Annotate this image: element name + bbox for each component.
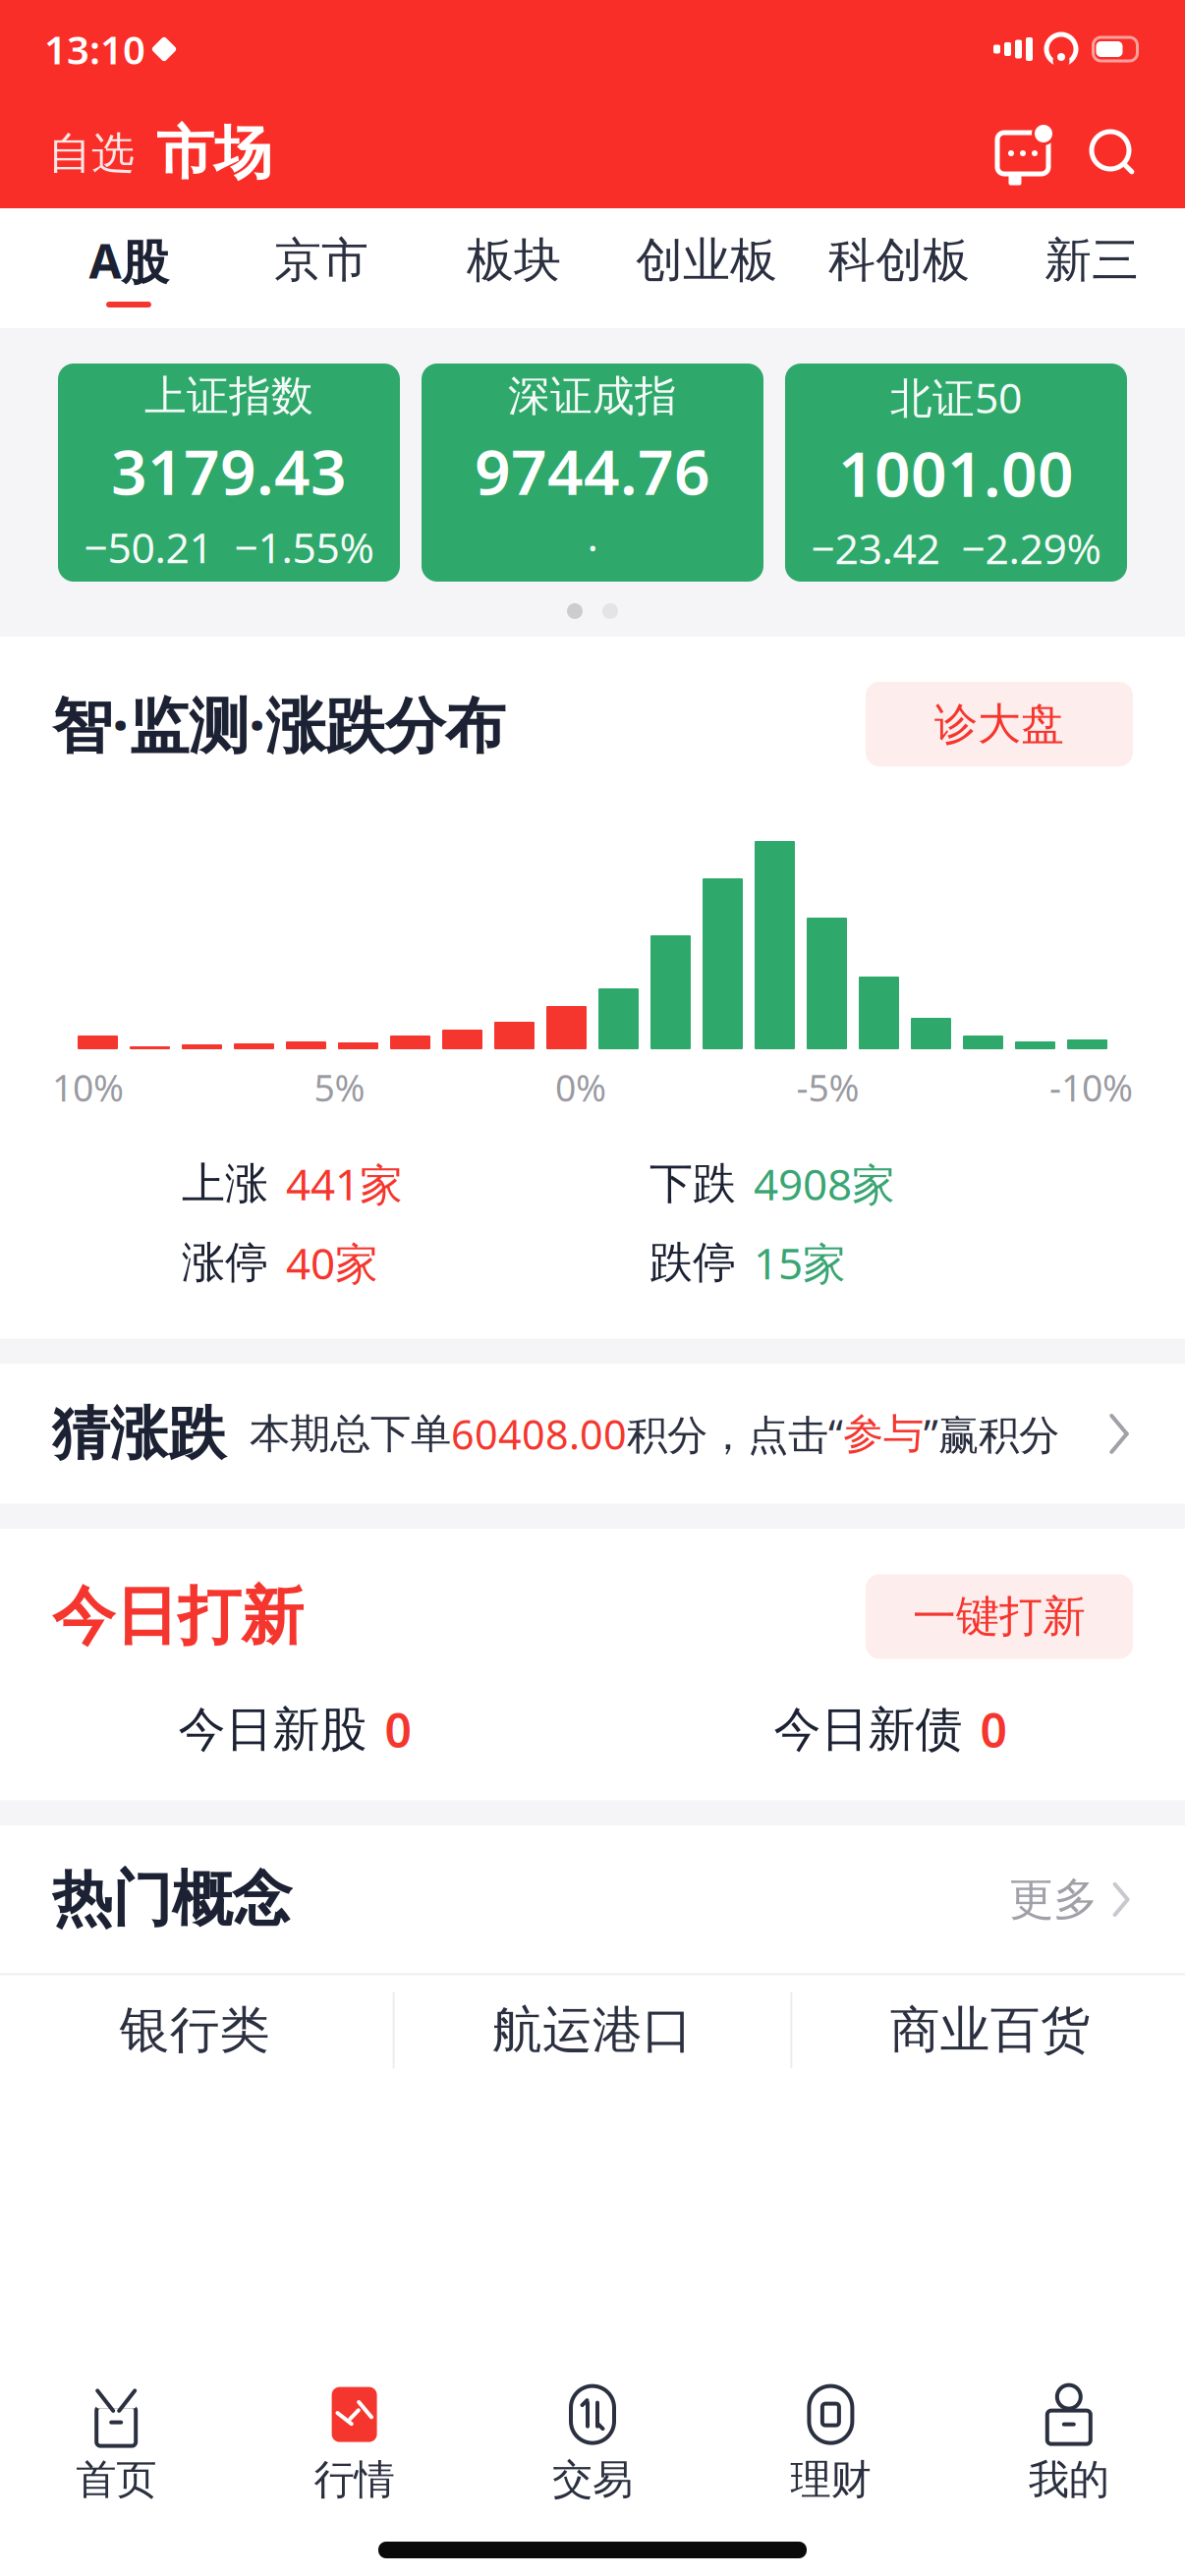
button[interactable]: 消息 <box>991 122 1054 185</box>
button[interactable]: 京市 <box>225 209 418 327</box>
staticText: · <box>587 519 598 575</box>
staticText: 我的 <box>1029 2455 1109 2505</box>
button[interactable]: 首页 <box>0 2381 235 2509</box>
button[interactable]: 交易 <box>473 2381 712 2509</box>
staticText: 13:10 <box>44 23 145 75</box>
button[interactable]: 诊大盘 <box>866 682 1133 766</box>
staticText: 更多 <box>1009 1872 1098 1927</box>
staticText: 9744.76 <box>475 429 710 512</box>
staticText: 北证50 <box>890 369 1022 425</box>
staticText: 市场 <box>156 118 272 189</box>
staticText: 3179.43 <box>111 429 347 512</box>
button[interactable]: 我的 <box>950 2381 1185 2509</box>
staticText: 下跌 <box>649 1157 736 1210</box>
staticText: 理财 <box>790 2455 871 2505</box>
button[interactable]: A股 <box>32 209 225 327</box>
button[interactable]: 猜涨跌 <box>0 1364 1185 1504</box>
button[interactable]: 航运港口 <box>395 1975 790 2085</box>
staticText: 深证成指 <box>508 370 677 422</box>
staticText: 京市 <box>274 231 368 289</box>
staticText: 热门概念 <box>52 1863 292 1937</box>
staticText: 积分，点击“ <box>627 1407 843 1461</box>
button[interactable]: 今日新债 <box>592 1680 1185 1779</box>
staticText: 参与 <box>843 1409 924 1459</box>
staticText: 4908家 <box>754 1155 895 1212</box>
button[interactable]: 今日新股 <box>0 1680 592 1779</box>
button[interactable]: 上证指数 <box>58 364 400 582</box>
button[interactable]: 行情 <box>235 2381 473 2509</box>
staticText: 银行类 <box>120 2000 270 2061</box>
staticText: 创业板 <box>636 231 777 289</box>
staticText: 自选 <box>48 127 135 180</box>
staticText: 诊大盘 <box>934 698 1064 751</box>
staticText: 跌停 <box>649 1236 736 1289</box>
staticText: 上证指数 <box>144 370 313 422</box>
staticText: −50.21 −1.55% <box>84 519 374 575</box>
staticText: 行情 <box>314 2455 395 2505</box>
staticText: −23.42 −2.29% <box>811 520 1101 576</box>
staticText: 猜涨跌 <box>52 1398 226 1469</box>
staticText: 本期总下单 <box>250 1409 451 1459</box>
button[interactable]: 理财 <box>712 2381 950 2509</box>
staticText: 1001.00 <box>838 431 1074 514</box>
staticText: 40家 <box>286 1234 378 1291</box>
staticText: 一键打新 <box>913 1590 1086 1643</box>
staticText: 交易 <box>552 2455 633 2505</box>
staticText: 0 <box>385 1698 411 1761</box>
button[interactable]: 新三 <box>995 209 1185 327</box>
staticText: 0 <box>980 1698 1007 1761</box>
staticText: 科创板 <box>828 231 970 289</box>
staticText: 商业百货 <box>890 2000 1090 2061</box>
staticText: 0% <box>555 1063 606 1112</box>
button[interactable]: 北证50 <box>785 364 1127 582</box>
staticText: 首页 <box>76 2455 156 2505</box>
staticText: 441家 <box>286 1155 403 1212</box>
staticText: 今日新股 <box>178 1701 367 1759</box>
button[interactable]: 市场 <box>142 112 286 195</box>
staticText: 10% <box>52 1063 124 1112</box>
staticText: 今日打新 <box>52 1578 304 1655</box>
button[interactable]: 自选 <box>40 117 142 190</box>
staticText: 智·监测·涨跌分布 <box>52 684 505 764</box>
staticText: ”赢积分 <box>924 1407 1059 1461</box>
button[interactable]: 深证成指 <box>422 364 763 582</box>
button[interactable]: 板块 <box>418 209 610 327</box>
staticText: 15家 <box>754 1234 846 1291</box>
staticText: -5% <box>796 1063 859 1112</box>
staticText: 新三 <box>1044 231 1139 289</box>
button[interactable]: 创业板 <box>610 209 803 327</box>
staticText: 5% <box>314 1063 365 1112</box>
button[interactable]: 商业百货 <box>792 1975 1185 2085</box>
staticText: 上涨 <box>182 1157 268 1210</box>
staticText: A股 <box>89 229 169 292</box>
staticText: 航运港口 <box>492 2000 693 2061</box>
button[interactable]: 搜索 <box>1054 122 1145 185</box>
staticText: 板块 <box>467 231 561 289</box>
staticText: 涨停 <box>182 1236 268 1289</box>
button[interactable]: 更多 <box>1009 1860 1133 1939</box>
button[interactable]: 银行类 <box>0 1975 393 2085</box>
staticText: -10% <box>1049 1063 1133 1112</box>
button[interactable]: 科创板 <box>803 209 995 327</box>
staticText: 今日新债 <box>774 1701 962 1759</box>
button[interactable]: 一键打新 <box>866 1574 1133 1659</box>
staticText: 60408.00 <box>451 1407 627 1461</box>
